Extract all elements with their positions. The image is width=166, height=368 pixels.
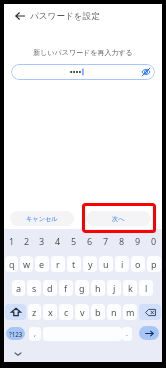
button[interactable]: 6: [82, 229, 98, 252]
button[interactable]: Back: [13, 9, 27, 23]
staticText: 2: [24, 235, 30, 247]
button[interactable]: Show password: [11, 64, 155, 80]
button[interactable]: v: [75, 304, 89, 320]
staticText: q: [9, 258, 15, 270]
staticText: j: [113, 282, 116, 294]
staticText: t: [72, 258, 76, 270]
button[interactable]: e: [35, 256, 49, 272]
button[interactable]: 5: [66, 229, 82, 252]
button[interactable]: j: [107, 280, 121, 296]
staticText: r: [56, 258, 60, 270]
staticText: f: [64, 282, 68, 294]
button[interactable]: ,: [29, 327, 41, 341]
button[interactable]: 4: [50, 229, 66, 252]
button[interactable]: 9: [130, 229, 146, 252]
button[interactable]: y: [83, 256, 97, 272]
button[interactable]: r: [51, 256, 65, 272]
staticText: 3: [39, 235, 45, 247]
staticText: k: [128, 282, 133, 294]
button[interactable]: i: [115, 256, 129, 272]
button[interactable]: ?123: [6, 327, 25, 340]
button[interactable]: 7: [98, 229, 114, 252]
staticText: w: [23, 258, 31, 270]
staticText: d: [47, 282, 53, 294]
button[interactable]: f: [59, 280, 73, 296]
staticText: p: [151, 258, 157, 270]
button[interactable]: o: [131, 256, 145, 272]
staticText: a: [16, 282, 22, 294]
button[interactable]: t: [67, 256, 81, 272]
staticText: b: [95, 306, 101, 318]
button[interactable]: c: [59, 304, 73, 320]
staticText: ?123: [9, 330, 23, 338]
button[interactable]: 8: [114, 229, 130, 252]
button[interactable]: n: [107, 304, 121, 320]
staticText: c: [64, 306, 69, 318]
staticText: 4: [55, 235, 61, 247]
staticText: h: [95, 282, 101, 294]
button[interactable]: g: [75, 280, 89, 296]
button[interactable]: Hide keyboard: [11, 347, 25, 361]
button[interactable]: m: [123, 304, 137, 320]
button[interactable]: h: [91, 280, 105, 296]
staticText: e: [39, 258, 45, 270]
staticText: 新しいパスワードを再入力する: [4, 48, 162, 57]
staticText: s: [32, 282, 37, 294]
button[interactable]: Enter: [139, 326, 159, 340]
staticText: l: [145, 282, 148, 294]
staticText: 0: [151, 235, 157, 247]
button[interactable]: x: [43, 304, 57, 320]
button[interactable]: Show password: [140, 66, 152, 78]
button[interactable]: l: [139, 280, 153, 296]
staticText: 7: [103, 235, 109, 247]
staticText: v: [80, 306, 85, 318]
staticText: キャンセル: [26, 215, 58, 223]
button[interactable]: 0: [146, 229, 162, 252]
button[interactable]: z: [28, 304, 41, 320]
button[interactable]: 3: [34, 229, 50, 252]
button[interactable]: 次へ: [86, 211, 151, 226]
button[interactable]: d: [43, 280, 57, 296]
staticText: 8: [119, 235, 125, 247]
staticText: ,: [34, 329, 36, 339]
button[interactable]: Shift: [5, 304, 26, 320]
staticText: z: [32, 306, 37, 318]
button[interactable]: 2: [19, 229, 34, 252]
button[interactable]: .: [122, 327, 132, 341]
button[interactable]: p: [147, 256, 161, 272]
staticText: u: [103, 258, 109, 270]
staticText: 次へ: [112, 215, 125, 223]
staticText: i: [121, 258, 124, 270]
staticText: .: [126, 329, 128, 339]
button[interactable]: 1: [4, 229, 19, 252]
button[interactable]: u: [99, 256, 113, 272]
staticText: 1: [9, 235, 15, 247]
staticText: 9: [135, 235, 141, 247]
button[interactable]: w: [20, 256, 33, 272]
staticText: o: [135, 258, 141, 270]
staticText: x: [48, 306, 53, 318]
staticText: y: [88, 258, 93, 270]
button[interactable]: b: [91, 304, 105, 320]
staticText: 6: [87, 235, 93, 247]
staticText: パスワードを設定: [30, 11, 100, 22]
button[interactable]: Backspace: [139, 304, 161, 320]
staticText: n: [111, 306, 117, 318]
button[interactable]: q: [5, 256, 18, 272]
staticText: g: [79, 282, 85, 294]
button[interactable]: k: [123, 280, 137, 296]
button[interactable]: キャンセル: [10, 211, 74, 226]
staticText: 5: [71, 235, 77, 247]
button[interactable]: a: [12, 280, 25, 296]
button[interactable]: s: [27, 280, 41, 296]
staticText: m: [126, 306, 135, 318]
